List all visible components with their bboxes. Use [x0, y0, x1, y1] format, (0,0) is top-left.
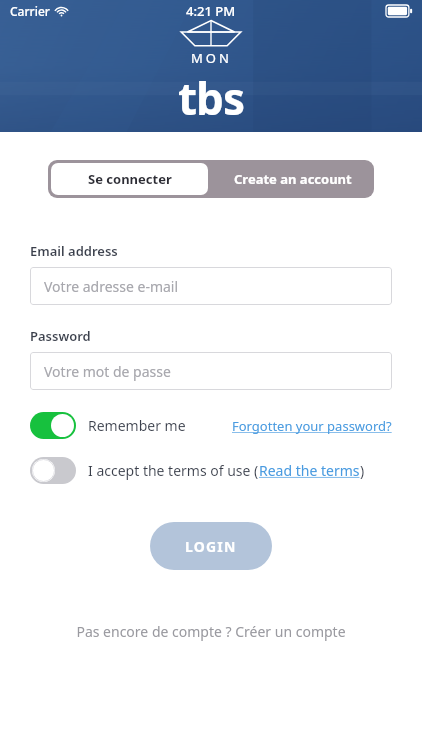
staticText: MON	[191, 49, 232, 67]
staticText: Votre adresse e-mail	[44, 277, 179, 296]
button[interactable]: Forgotten your password?	[232, 417, 392, 435]
staticText: Email address	[30, 242, 118, 260]
staticText: Se connecter	[88, 170, 172, 188]
staticText: Password	[30, 327, 91, 345]
staticText: I accept the terms of use (	[88, 461, 259, 480]
button[interactable]: Votre mot de passe	[30, 352, 392, 390]
button[interactable]: Create an account	[211, 160, 374, 198]
button[interactable]: Toggle off	[30, 457, 76, 484]
button[interactable]: Se connecter	[51, 163, 208, 195]
staticText: Forgotten your password?	[232, 417, 392, 435]
button[interactable]: LOGIN	[150, 522, 272, 570]
staticText: Carrier	[10, 3, 50, 19]
staticText: )	[360, 461, 365, 480]
staticText: Create an account	[234, 170, 352, 188]
button[interactable]: Read the terms	[259, 461, 360, 480]
button[interactable]: Toggle on	[30, 412, 76, 439]
staticText: Remember me	[88, 416, 186, 435]
staticText: Read the terms	[259, 461, 360, 480]
button[interactable]: Votre adresse e-mail	[30, 267, 392, 305]
button[interactable]: Pas encore de compte ? Créer un compte	[0, 622, 422, 641]
staticText: LOGIN	[185, 537, 237, 556]
staticText: Votre mot de passe	[44, 362, 171, 381]
staticText: tbs	[178, 68, 244, 128]
staticText: 4:21 PM	[186, 2, 236, 20]
staticText: Pas encore de compte ? Créer un compte	[76, 622, 346, 641]
